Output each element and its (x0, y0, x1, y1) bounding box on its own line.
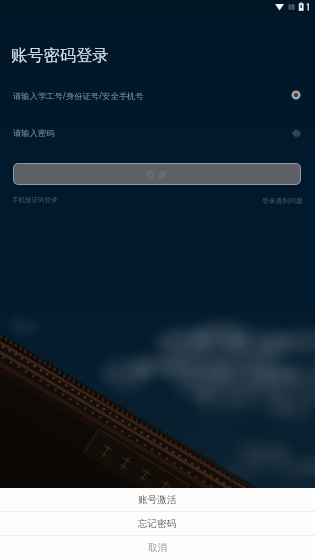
button[interactable]: Show password (292, 129, 301, 138)
button[interactable]: 账号激活 (0, 488, 315, 511)
staticText: 账号激活 (138, 494, 177, 506)
button[interactable]: 忘记密码 (0, 512, 315, 535)
button[interactable]: 手机验证码登录 (12, 196, 58, 204)
staticText: 请输入学工号/身份证号/安全手机号 (13, 90, 144, 101)
button[interactable]: 取消 (0, 536, 315, 560)
staticText: 登 录 (146, 168, 168, 181)
staticText: 账号密码登录 (11, 45, 109, 66)
staticText: 取消 (148, 542, 168, 554)
button[interactable]: Clear (291, 90, 301, 100)
staticText: 请输入密码 (13, 128, 55, 138)
staticText: 忘记密码 (138, 518, 177, 530)
button[interactable]: 登录遇到问题 (262, 196, 303, 205)
button[interactable]: 登 录 (13, 163, 301, 185)
